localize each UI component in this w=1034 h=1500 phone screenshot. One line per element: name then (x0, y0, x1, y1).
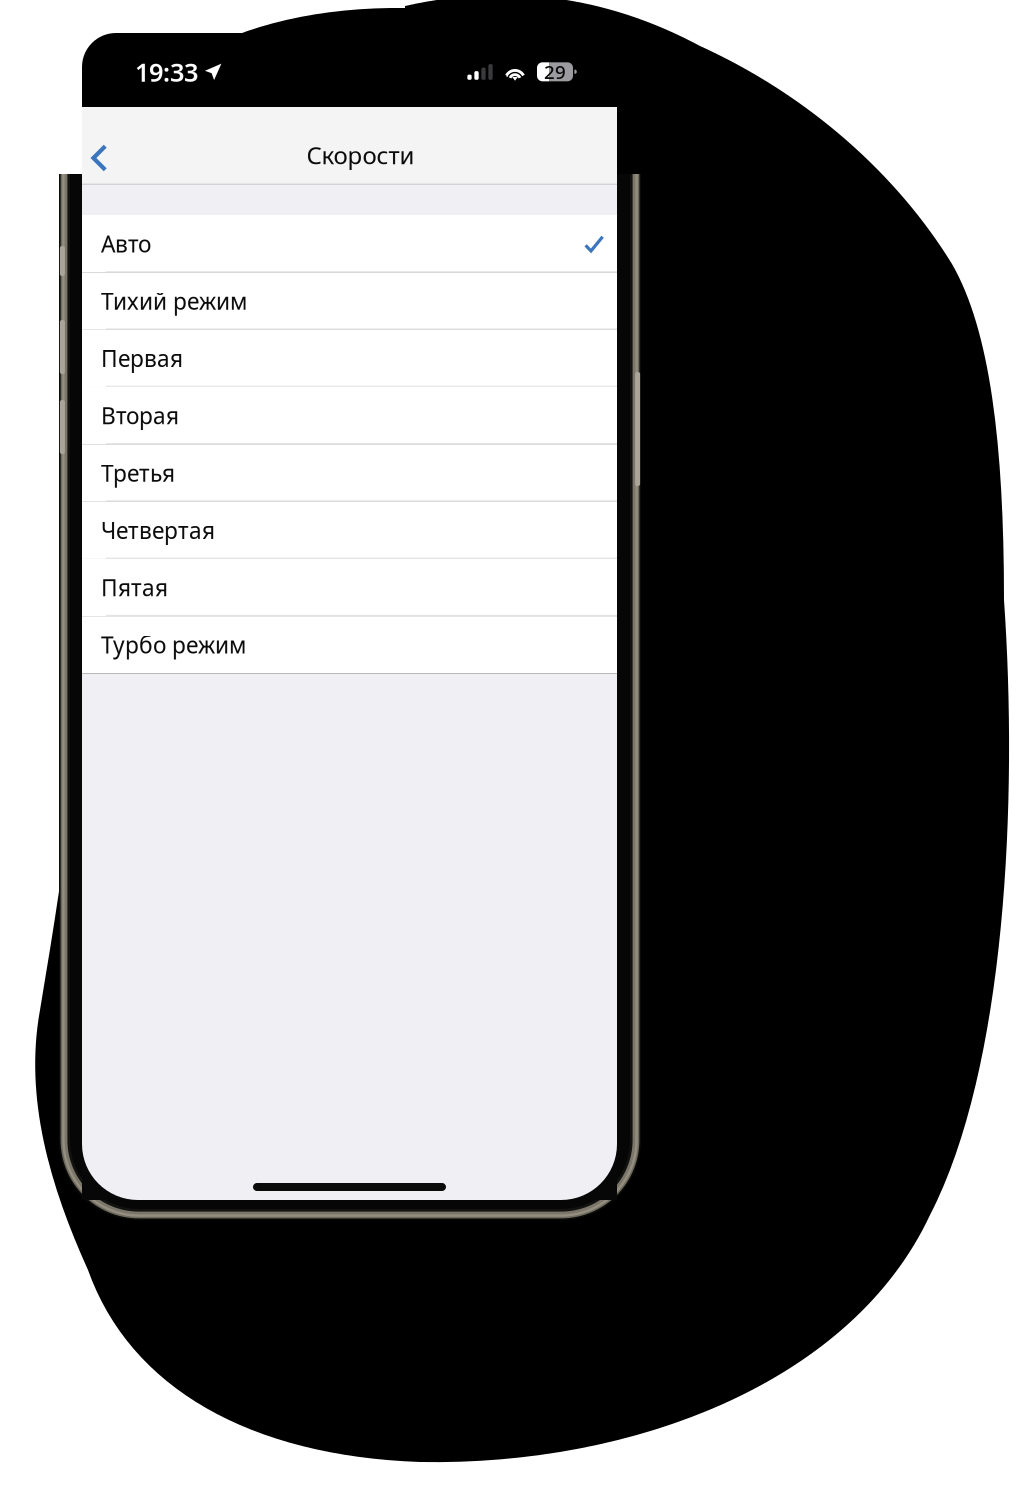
staticText: 29 (544, 59, 566, 84)
staticText: Вторая (101, 400, 179, 431)
button[interactable]: Первая (82, 330, 617, 387)
staticText: Скорости (306, 139, 414, 171)
button[interactable]: Третья (82, 444, 617, 501)
button[interactable]: Четвертая (82, 501, 617, 559)
button[interactable]: Тихий режим (82, 272, 617, 330)
staticText: Авто (101, 229, 151, 259)
button[interactable]: Вторая (82, 387, 617, 444)
button[interactable]: Пятая (82, 559, 617, 616)
staticText: Тихий режим (101, 286, 247, 316)
button[interactable]: Назад (82, 119, 140, 197)
staticText: Турбо режим (101, 630, 246, 660)
button[interactable]: Турбо режим (82, 616, 617, 673)
staticText: Четвертая (101, 515, 215, 545)
staticText: Пятая (101, 572, 168, 602)
staticText: Первая (101, 343, 183, 373)
staticText: Третья (101, 458, 175, 488)
staticText: 19:33 (135, 55, 198, 89)
button[interactable]: Авто (82, 215, 617, 272)
